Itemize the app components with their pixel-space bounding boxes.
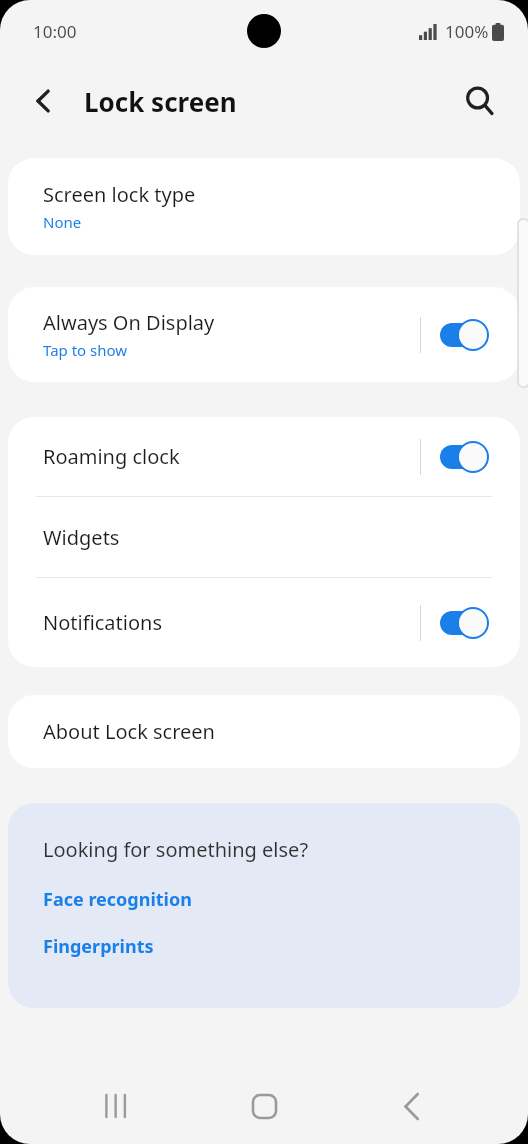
staticText: Tap to show — [43, 340, 128, 360]
staticText: Roaming clock — [43, 443, 420, 470]
button[interactable]: About Lock screen — [8, 695, 520, 768]
staticText: Notifications — [43, 609, 420, 636]
staticText: Screen lock type — [43, 181, 196, 208]
button[interactable]: Toggle on — [440, 606, 488, 640]
staticText: None — [43, 212, 82, 232]
button[interactable]: Recent apps — [84, 1074, 148, 1138]
button[interactable]: Notifications — [8, 578, 520, 667]
staticText: 100% — [445, 20, 489, 43]
staticText: About Lock screen — [43, 718, 215, 745]
button[interactable]: Widgets — [8, 497, 520, 577]
button[interactable]: Fingerprints — [43, 934, 154, 959]
button[interactable]: Toggle on — [440, 318, 488, 352]
button[interactable]: Face recognition — [43, 887, 192, 912]
staticText: 10:00 — [33, 20, 77, 43]
staticText: Fingerprints — [43, 934, 154, 959]
button[interactable]: Back — [20, 77, 68, 125]
staticText: Face recognition — [43, 887, 192, 912]
staticText: Looking for something else? — [43, 836, 309, 863]
button[interactable]: Roaming clock — [8, 417, 520, 496]
staticText: Lock screen — [84, 84, 237, 119]
staticText: Widgets — [43, 524, 120, 551]
staticText: Always On Display — [43, 309, 215, 336]
button[interactable]: Back — [380, 1074, 444, 1138]
button[interactable]: Screen lock type — [8, 158, 520, 255]
button[interactable]: Home — [232, 1074, 296, 1138]
button[interactable]: Always On Display — [8, 287, 520, 382]
button[interactable]: Toggle on — [440, 440, 488, 474]
button[interactable]: Search — [456, 77, 504, 125]
